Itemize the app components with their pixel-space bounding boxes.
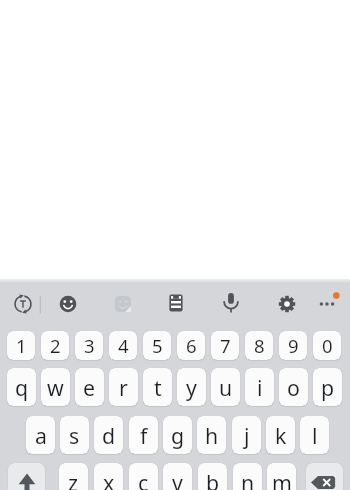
button[interactable]: a xyxy=(26,416,55,454)
button[interactable]: c xyxy=(129,463,158,490)
staticText: d xyxy=(102,421,116,450)
staticText: e xyxy=(83,373,96,402)
staticText: b xyxy=(206,468,220,490)
staticText: y xyxy=(186,373,197,402)
button[interactable]: x xyxy=(94,463,123,490)
staticText: 7 xyxy=(220,333,231,358)
button[interactable] xyxy=(307,284,347,324)
staticText: o xyxy=(287,373,300,402)
staticText: i xyxy=(257,373,263,402)
button[interactable]: v xyxy=(163,463,192,490)
staticText: g xyxy=(171,421,185,450)
staticText: v xyxy=(172,468,183,490)
button[interactable]: l xyxy=(300,416,329,454)
button[interactable]: 2 xyxy=(41,331,69,360)
button[interactable]: y xyxy=(177,368,206,406)
staticText: t xyxy=(154,373,162,402)
staticText: l xyxy=(312,421,318,450)
staticText: f xyxy=(140,421,148,450)
button[interactable]: 0 xyxy=(313,331,341,360)
staticText: r xyxy=(119,373,128,402)
button[interactable]: 1 xyxy=(7,331,35,360)
button[interactable] xyxy=(48,284,88,324)
staticText: j xyxy=(244,421,250,450)
button[interactable]: m xyxy=(267,463,296,490)
staticText: 6 xyxy=(186,333,197,358)
button[interactable] xyxy=(103,284,143,324)
button[interactable]: r xyxy=(109,368,138,406)
button[interactable]: i xyxy=(245,368,274,406)
staticText: q xyxy=(15,373,29,402)
button[interactable]: u xyxy=(211,368,240,406)
button[interactable]: p xyxy=(313,368,342,406)
button[interactable]: 5 xyxy=(143,331,171,360)
button[interactable] xyxy=(306,463,343,490)
staticText: h xyxy=(205,421,219,450)
button[interactable]: k xyxy=(266,416,295,454)
staticText: 8 xyxy=(254,333,265,358)
button[interactable]: b xyxy=(198,463,227,490)
staticText: k xyxy=(275,421,287,450)
button[interactable]: o xyxy=(279,368,308,406)
button[interactable]: s xyxy=(60,416,89,454)
button[interactable]: 7 xyxy=(211,331,239,360)
button[interactable]: d xyxy=(94,416,123,454)
button[interactable]: g xyxy=(163,416,192,454)
staticText: n xyxy=(241,468,255,490)
button[interactable]: e xyxy=(75,368,104,406)
button[interactable]: 3 xyxy=(75,331,103,360)
staticText: 9 xyxy=(288,333,299,358)
staticText: 4 xyxy=(118,333,129,358)
button[interactable]: j xyxy=(232,416,261,454)
button[interactable]: t xyxy=(143,368,172,406)
staticText: p xyxy=(321,373,335,402)
staticText: x xyxy=(103,468,115,490)
staticText: s xyxy=(69,421,80,450)
button[interactable]: w xyxy=(41,368,70,406)
button[interactable]: n xyxy=(233,463,262,490)
button[interactable]: h xyxy=(197,416,226,454)
staticText: u xyxy=(219,373,233,402)
staticText: 2 xyxy=(50,333,61,358)
button[interactable] xyxy=(8,463,45,490)
staticText: m xyxy=(272,468,292,490)
staticText: w xyxy=(47,373,64,402)
button[interactable]: z xyxy=(59,463,88,490)
button[interactable] xyxy=(211,284,251,324)
staticText: c xyxy=(138,468,149,490)
button[interactable]: 4 xyxy=(109,331,137,360)
staticText: a xyxy=(35,421,47,450)
button[interactable]: 6 xyxy=(177,331,205,360)
button[interactable]: q xyxy=(7,368,36,406)
staticText: 0 xyxy=(322,333,333,358)
staticText: z xyxy=(68,468,79,490)
staticText: 3 xyxy=(84,333,95,358)
button[interactable]: 9 xyxy=(279,331,307,360)
button[interactable]: 8 xyxy=(245,331,273,360)
staticText: 5 xyxy=(152,333,163,358)
button[interactable] xyxy=(267,284,307,324)
staticText: 1 xyxy=(16,333,27,358)
button[interactable] xyxy=(3,284,43,324)
button[interactable]: f xyxy=(129,416,158,454)
button[interactable] xyxy=(156,283,196,323)
